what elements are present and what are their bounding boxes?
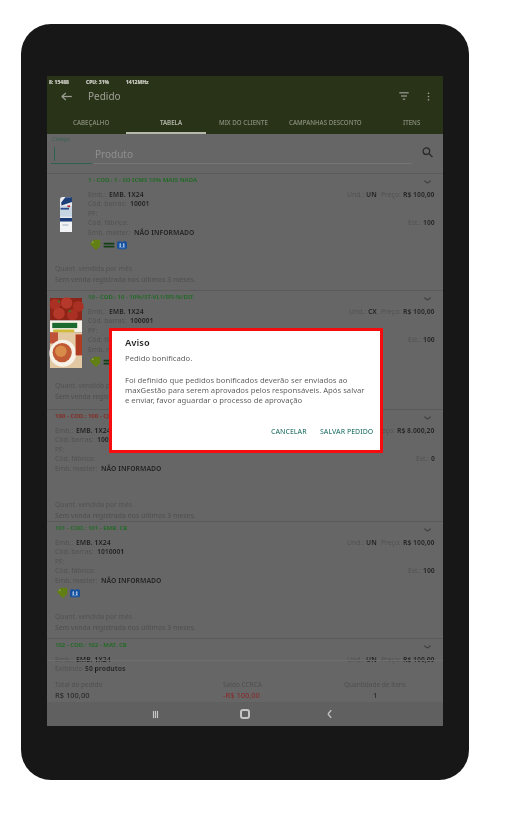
staticText: Est.:	[408, 218, 423, 227]
staticText: Cód. fábrica:	[88, 218, 128, 227]
staticText: R$ 100,00	[403, 307, 435, 316]
staticText: TABELA	[160, 118, 182, 126]
staticText: Cód. barras:	[55, 435, 94, 444]
staticText: Cód. fábrica:	[88, 335, 128, 344]
staticText: R$ 100,00	[403, 538, 435, 547]
staticText: UN	[366, 190, 377, 199]
staticText: Emb. master:	[55, 576, 98, 585]
button[interactable]: Search	[417, 142, 437, 162]
staticText: EMB. 1X24	[76, 655, 111, 664]
staticText: 100 - COD.: 100 - CJ	[55, 412, 110, 420]
button[interactable]: MIX DO CLIENTE	[216, 110, 270, 134]
button[interactable]: CABEÇALHO	[47, 110, 136, 134]
staticText: Aviso	[125, 336, 150, 349]
staticText: CANCELAR	[271, 427, 307, 437]
staticText: 10 - COD.: 10 - 10%/ST-VL1/IPI-N/DIF	[88, 293, 194, 301]
staticText: 101 - COD.: 101 - EMB. CB	[55, 524, 128, 532]
staticText: 100	[423, 218, 435, 227]
staticText: Und.:	[341, 426, 360, 435]
staticText: Quant. vendida por mês	[55, 612, 133, 621]
staticText: Est.:	[408, 566, 423, 575]
staticText: R$ 8.000,20	[397, 426, 435, 435]
staticText: Quant. vendida por mês	[55, 264, 133, 273]
staticText: 100	[423, 335, 435, 344]
staticText: 100001	[130, 316, 154, 325]
button[interactable]: CAMPANHAS DESCONTO	[270, 110, 380, 134]
staticText: NÃO INFORMADO	[134, 345, 195, 354]
staticText: 1010001	[97, 547, 125, 556]
staticText: CAMPANHAS DESCONTO	[289, 118, 362, 126]
staticText: Cód. fábrica:	[55, 566, 95, 575]
staticText: PF:	[55, 557, 65, 566]
staticText: R$ 100,00	[403, 655, 435, 664]
staticText: Preço:	[381, 190, 403, 199]
staticText: 50 produtos	[85, 664, 126, 673]
staticText: MIX DO CLIENTE	[219, 118, 268, 126]
staticText: 100	[97, 435, 109, 444]
staticText: Emb. master:	[55, 464, 98, 473]
staticText: PF:	[88, 326, 98, 335]
button[interactable]: Back	[320, 704, 340, 724]
button[interactable]: More options	[418, 86, 438, 106]
staticText: Emb. master:	[88, 228, 131, 237]
staticText: 102 - COD.: 102 - MAT. CB	[55, 641, 127, 649]
button[interactable]: ITENS	[380, 110, 443, 134]
staticText: Quant. vendida por mês	[55, 500, 133, 509]
button[interactable]: 102 - COD.: 102 - MAT. CB	[47, 638, 443, 660]
button[interactable]: Home	[235, 704, 255, 724]
staticText: Est.:	[408, 335, 423, 344]
staticText: UN	[360, 426, 371, 435]
staticText: NÃO INFORMADO	[101, 576, 162, 585]
button[interactable]: CANCELAR	[266, 423, 312, 441]
staticText: Produto	[95, 147, 134, 161]
button[interactable]: Back	[56, 86, 76, 106]
staticText: UN	[366, 538, 377, 547]
button[interactable]: 1 - COD.: 1 - SO ICMS 10% MAIS NADA	[47, 173, 443, 290]
staticText: Cód. barras:	[88, 199, 127, 208]
staticText: Exibindo	[55, 664, 85, 673]
staticText: Est.:	[416, 454, 431, 463]
button[interactable]: TABELA	[126, 110, 216, 134]
button[interactable]: SALVAR PEDIDO	[315, 423, 379, 441]
staticText: PF:	[88, 209, 98, 218]
staticText: Preço:	[381, 307, 403, 316]
staticText: 8: 15488	[49, 79, 69, 86]
staticText: NÃO INFORMADO	[134, 228, 195, 237]
staticText: EMB. 1X24	[109, 190, 144, 199]
staticText: Sem venda registrada nos últimos 3 meses…	[55, 623, 196, 632]
staticText: Sem venda registrada nos últimos 3 meses…	[55, 275, 196, 284]
staticText: Emb.:	[55, 538, 73, 547]
staticText: Código	[52, 135, 71, 142]
button[interactable]: 10 - COD.: 10 - 10%/ST-VL1/IPI-N/DIF	[47, 290, 443, 409]
staticText: Cód. fábrica:	[55, 454, 95, 463]
staticText: Cód. barras:	[88, 316, 127, 325]
staticText: Preço:	[375, 426, 397, 435]
staticText: Emb.:	[55, 426, 73, 435]
staticText: EMB. 1X24	[76, 538, 111, 547]
staticText: Cód. barras:	[55, 547, 94, 556]
staticText: -R$ 100,00	[223, 690, 260, 700]
staticText: Und.:	[349, 307, 368, 316]
staticText: Und.:	[347, 655, 366, 664]
staticText: Sem venda registrada nos últimos 3 meses…	[55, 511, 196, 520]
staticText: CPU: 31%	[86, 79, 110, 86]
button[interactable]: Filter	[394, 86, 414, 106]
staticText: 10001	[130, 199, 150, 208]
staticText: CX	[368, 307, 377, 316]
staticText: PF:	[55, 445, 65, 454]
staticText: Quant. vendida por mês	[55, 381, 133, 390]
staticText: Und.:	[347, 190, 366, 199]
staticText: 1412MHz	[126, 79, 149, 86]
staticText: 0	[431, 454, 435, 463]
staticText: 100	[423, 566, 435, 575]
button[interactable]: Recents	[145, 704, 165, 724]
staticText: 1	[373, 690, 378, 700]
staticText: Pedido	[88, 89, 121, 103]
staticText: Emb.:	[88, 190, 106, 199]
staticText: Emb.:	[88, 307, 106, 316]
staticText: Emb. master:	[88, 345, 131, 354]
button[interactable]: 101 - COD.: 101 - EMB. CB	[47, 521, 443, 638]
button[interactable]: 100 - COD.: 100 - CJ	[47, 409, 443, 521]
staticText: R$ 100,00	[55, 690, 90, 700]
staticText: 1 - COD.: 1 - SO ICMS 10% MAIS NADA	[88, 176, 198, 184]
